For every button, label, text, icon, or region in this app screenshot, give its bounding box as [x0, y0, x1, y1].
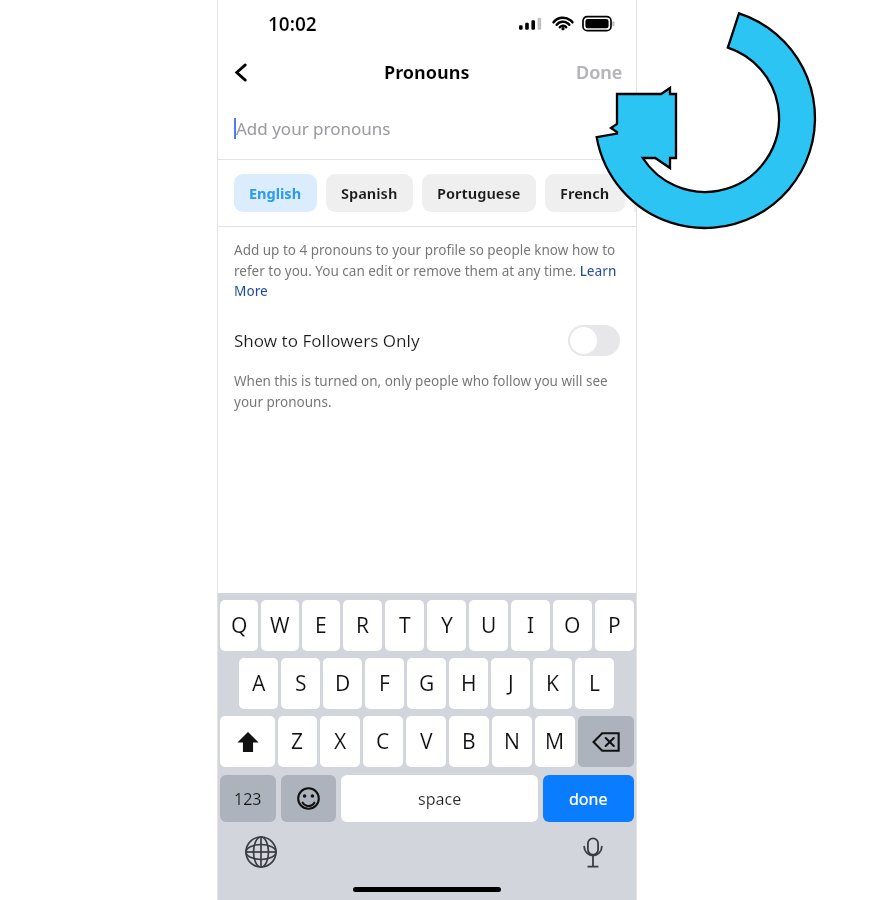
staticText: V: [420, 727, 433, 756]
staticText: E: [315, 611, 327, 640]
button[interactable]: M: [535, 716, 575, 767]
button[interactable]: B: [449, 716, 489, 767]
button[interactable]: Dictation: [576, 835, 610, 869]
button[interactable]: Y: [427, 600, 466, 651]
staticText: O: [564, 611, 581, 640]
staticText: Add your pronouns: [236, 117, 391, 140]
staticText: space: [418, 788, 462, 810]
staticText: Portuguese: [437, 183, 521, 203]
button[interactable]: French: [545, 174, 625, 212]
button[interactable]: W: [261, 600, 299, 651]
button[interactable]: Show to Followers Only: [568, 325, 620, 356]
button[interactable]: H: [449, 658, 488, 709]
button[interactable]: N: [492, 716, 532, 767]
button[interactable]: Emoji: [281, 775, 336, 822]
button[interactable]: U: [469, 600, 508, 651]
button[interactable]: I: [511, 600, 550, 651]
staticText: A: [252, 669, 266, 698]
button[interactable]: O: [553, 600, 592, 651]
staticText: L: [589, 669, 601, 698]
staticText: F: [379, 669, 390, 698]
button[interactable]: Show to Followers Only: [234, 318, 620, 362]
staticText: Y: [441, 611, 453, 640]
button[interactable]: V: [406, 716, 446, 767]
staticText: Add up to 4 pronouns to your profile so …: [234, 241, 620, 300]
staticText: I: [527, 611, 535, 640]
button[interactable]: Shift: [220, 716, 275, 767]
staticText: D: [335, 669, 351, 698]
button[interactable]: A: [239, 658, 278, 709]
button[interactable]: S: [281, 658, 320, 709]
staticText: English: [249, 183, 302, 203]
button[interactable]: T: [385, 600, 424, 651]
button[interactable]: done: [543, 775, 634, 822]
button[interactable]: X: [320, 716, 360, 767]
staticText: Q: [231, 611, 248, 640]
staticText: U: [481, 611, 497, 640]
staticText: P: [608, 611, 621, 640]
staticText: N: [504, 727, 520, 756]
button[interactable]: Change keyboard: [244, 835, 278, 869]
button[interactable]: C: [363, 716, 403, 767]
button[interactable]: space: [341, 775, 538, 822]
button[interactable]: Portuguese: [422, 174, 536, 212]
button[interactable]: R: [343, 600, 382, 651]
staticText: Z: [291, 727, 304, 756]
staticText: J: [508, 669, 514, 698]
staticText: Show to Followers Only: [234, 329, 568, 352]
button[interactable]: G: [407, 658, 446, 709]
staticText: X: [334, 727, 347, 756]
staticText: M: [545, 727, 565, 756]
staticText: T: [399, 611, 411, 640]
staticText: R: [356, 611, 370, 640]
staticText: When this is turned on, only people who …: [234, 372, 620, 411]
button[interactable]: Backspace: [578, 716, 634, 767]
button[interactable]: Add your pronouns: [217, 98, 637, 159]
staticText: 123: [234, 788, 262, 810]
button[interactable]: L: [575, 658, 614, 709]
staticText: G: [419, 669, 435, 698]
button[interactable]: Done: [576, 60, 637, 85]
button[interactable]: Q: [220, 600, 258, 651]
button[interactable]: E: [302, 600, 340, 651]
staticText: French: [560, 183, 610, 203]
staticText: K: [546, 669, 559, 698]
button[interactable]: Z: [278, 716, 317, 767]
button[interactable]: J: [491, 658, 530, 709]
button[interactable]: German: [634, 174, 637, 212]
button[interactable]: Back: [219, 50, 263, 94]
staticText: done: [569, 788, 608, 810]
staticText: H: [461, 669, 477, 698]
button[interactable]: English: [234, 174, 317, 212]
button[interactable]: 123: [220, 775, 276, 822]
button[interactable]: P: [595, 600, 634, 651]
button[interactable]: K: [533, 658, 572, 709]
staticText: Pronouns: [384, 60, 470, 85]
button[interactable]: D: [323, 658, 362, 709]
staticText: W: [270, 611, 290, 640]
button[interactable]: F: [365, 658, 404, 709]
staticText: Spanish: [341, 183, 398, 203]
staticText: C: [376, 727, 390, 756]
staticText: S: [295, 669, 307, 698]
staticText: 10:02: [268, 11, 317, 37]
button[interactable]: Spanish: [326, 174, 413, 212]
staticText: Done: [576, 60, 623, 85]
staticText: B: [462, 727, 476, 756]
